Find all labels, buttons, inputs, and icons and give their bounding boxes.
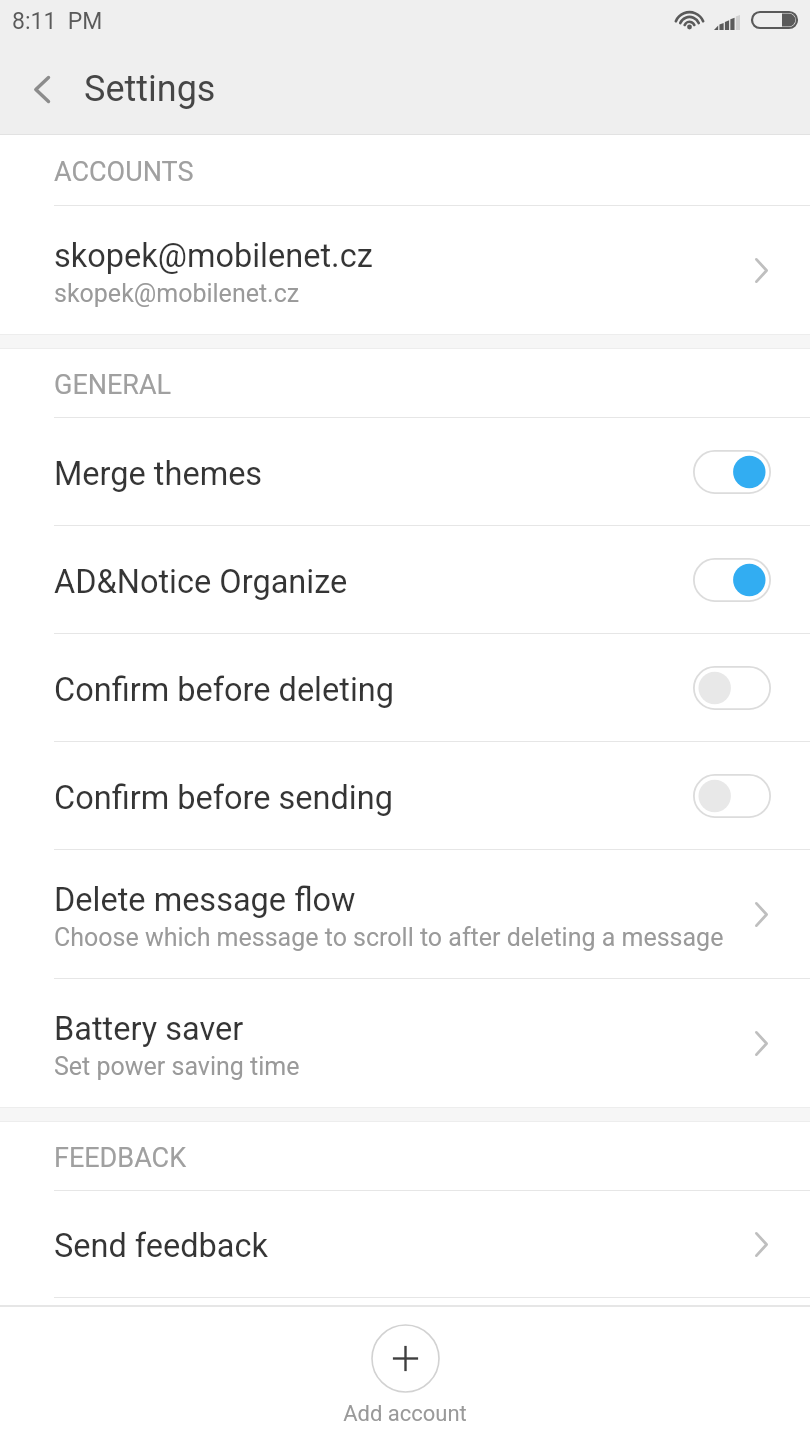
staticText: Send feedback (54, 1227, 755, 1265)
staticText: 8:11 PM (12, 8, 103, 35)
staticText: GENERAL (54, 369, 172, 401)
staticText: AD&Notice Organize (54, 563, 693, 601)
staticText: Add account (343, 1401, 467, 1427)
staticText: Settings (84, 68, 216, 110)
staticText: skopek@mobilenet.cz (54, 237, 373, 275)
button[interactable]: skopek@mobilenet.cz (0, 206, 810, 334)
button[interactable]: Confirm before deleting (0, 634, 810, 742)
button[interactable]: Send feedback (0, 1191, 810, 1298)
staticText: skopek@mobilenet.cz (54, 279, 300, 308)
button[interactable]: Back (9, 56, 75, 122)
button[interactable]: Battery saver (0, 979, 810, 1107)
button[interactable]: Delete message flow (0, 850, 810, 979)
staticText: Confirm before deleting (54, 671, 693, 709)
button[interactable]: Add account (343, 1307, 467, 1427)
staticText: Choose which message to scroll to after … (54, 923, 724, 952)
staticText: Delete message flow (54, 881, 356, 919)
staticText: Merge themes (54, 455, 693, 493)
staticText: Battery saver (54, 1010, 244, 1048)
button[interactable]: Confirm before sending (0, 742, 810, 850)
staticText: FEEDBACK (54, 1142, 187, 1174)
button[interactable]: AD&Notice Organize (0, 526, 810, 634)
staticText: ACCOUNTS (54, 156, 194, 188)
staticText: Confirm before sending (54, 779, 693, 817)
staticText: Set power saving time (54, 1052, 300, 1081)
button[interactable]: Merge themes (0, 418, 810, 526)
